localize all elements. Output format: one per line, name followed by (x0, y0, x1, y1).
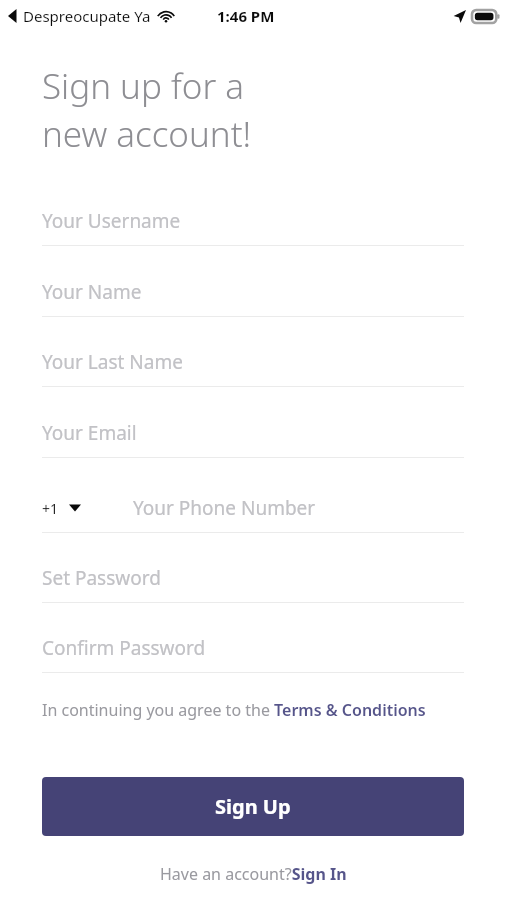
staticText: Your Phone Number (133, 495, 316, 521)
button[interactable]: Your Name (42, 268, 464, 316)
staticText: Your Name (42, 279, 142, 305)
staticText: Your Username (42, 208, 181, 234)
button[interactable]: Select country code (42, 484, 122, 532)
button[interactable]: In continuing you agree to the Terms & C… (42, 699, 464, 721)
button[interactable]: Have an account?Sign In (0, 861, 507, 887)
staticText: Have an account?Sign In (160, 863, 347, 885)
staticText: In continuing you agree to the Terms & C… (42, 699, 426, 721)
staticText: Sign up for a (42, 62, 245, 110)
staticText: Despreocupate Ya (23, 6, 151, 26)
staticText: new account! (42, 110, 252, 158)
button[interactable]: Your Phone Number (133, 484, 464, 532)
staticText: Confirm Password (42, 635, 206, 661)
button[interactable]: Your Username (42, 197, 464, 245)
staticText: Sign Up (215, 793, 291, 820)
button[interactable]: Set Password (42, 554, 464, 602)
button[interactable]: Your Last Name (42, 338, 464, 386)
button[interactable]: Sign Up (42, 777, 464, 836)
staticText: +1 (42, 499, 59, 518)
staticText: 1:46 PM (217, 6, 275, 26)
staticText: Your Email (42, 420, 137, 446)
button[interactable]: Your Email (42, 409, 464, 457)
staticText: Set Password (42, 565, 161, 591)
button[interactable]: Confirm Password (42, 624, 464, 672)
staticText: Your Last Name (42, 349, 183, 375)
